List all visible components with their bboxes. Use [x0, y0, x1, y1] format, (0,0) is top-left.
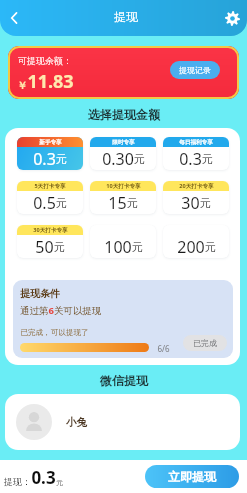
staticText: 10天打卡专享 — [106, 182, 141, 190]
staticText: 50 — [35, 236, 54, 258]
staticText: 元 — [132, 240, 143, 254]
staticText: 元 — [56, 152, 67, 166]
staticText: 提现条件 — [20, 287, 60, 300]
staticText: 微信提现 — [100, 373, 148, 388]
staticText: 0.3 — [179, 148, 202, 170]
staticText: 元 — [127, 196, 138, 210]
button[interactable]: 立即提现 — [145, 465, 239, 488]
staticText: 新手专享 — [39, 139, 62, 146]
staticText: 可提现余额： — [18, 55, 72, 66]
staticText: 0.5 — [33, 192, 56, 214]
staticText: 6/6 — [157, 343, 170, 354]
staticText: 已完成 — [193, 338, 217, 348]
staticText: 小兔 — [66, 416, 87, 429]
staticText: 提现： — [4, 476, 31, 487]
staticText: 100 — [104, 236, 132, 258]
staticText: 5天打卡专享 — [34, 182, 66, 190]
staticText: 元 — [205, 240, 216, 254]
button[interactable]: 限时专享 — [90, 137, 156, 170]
button[interactable]: 20天打卡专享 — [163, 181, 229, 214]
staticText: 已完成，可以提现了 — [20, 328, 89, 338]
staticText: 元 — [56, 478, 63, 487]
staticText: 选择提现金额 — [88, 107, 160, 122]
staticText: 15 — [108, 192, 127, 214]
staticText: 限时专享 — [112, 139, 135, 146]
button[interactable]: 100 — [90, 225, 156, 258]
staticText: 提现 — [114, 9, 138, 24]
button[interactable]: Back — [0, 4, 28, 32]
staticText: 通过第6关可以提现 — [20, 304, 102, 317]
button[interactable]: 30天打卡专享 — [17, 225, 83, 258]
staticText: 20天打卡专享 — [179, 182, 214, 190]
staticText: 元 — [202, 152, 213, 166]
staticText: ￥ — [17, 79, 27, 92]
button[interactable]: 新手专享 — [17, 137, 83, 170]
button[interactable]: Settings — [219, 5, 245, 31]
button[interactable]: 提现记录 — [170, 61, 220, 79]
staticText: 元 — [56, 196, 67, 210]
button[interactable]: 已完成 — [183, 335, 227, 351]
staticText: 提现记录 — [179, 65, 211, 75]
staticText: 立即提现 — [168, 469, 216, 484]
staticText: 11.83 — [27, 69, 74, 94]
staticText: 0.30 — [102, 148, 134, 170]
button[interactable]: 每日福利专享 — [163, 137, 229, 170]
staticText: 0.3 — [31, 466, 56, 489]
button[interactable]: 小兔 — [5, 394, 240, 450]
staticText: 每日福利专享 — [179, 139, 213, 146]
staticText: 元 — [134, 152, 145, 166]
button[interactable]: 200 — [163, 225, 229, 258]
staticText: 30 — [181, 192, 200, 214]
staticText: 元 — [54, 240, 65, 254]
button[interactable]: 10天打卡专享 — [90, 181, 156, 214]
staticText: 元 — [200, 196, 211, 210]
button[interactable]: 5天打卡专享 — [17, 181, 83, 214]
staticText: 200 — [177, 236, 205, 258]
staticText: 30天打卡专享 — [33, 226, 68, 234]
staticText: 0.3 — [33, 148, 56, 170]
